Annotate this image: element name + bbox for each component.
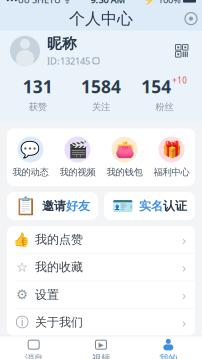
staticText: 认证 bbox=[163, 199, 187, 213]
staticText: 📋 bbox=[15, 196, 37, 216]
button[interactable]: 👛 bbox=[101, 136, 148, 178]
staticText: ⚡ 100% bbox=[144, 0, 181, 6]
staticText: 🎁 bbox=[161, 140, 181, 159]
button[interactable]: ☆ bbox=[7, 254, 195, 281]
staticText: 关于我们 bbox=[35, 315, 83, 330]
staticText: 1584 bbox=[81, 75, 121, 98]
button[interactable]: 🎬 bbox=[54, 136, 101, 178]
staticText: ▶ bbox=[98, 341, 103, 348]
staticText: 💬 bbox=[20, 140, 40, 159]
staticText: 154 bbox=[141, 75, 171, 98]
staticText: 昵称 bbox=[47, 35, 77, 53]
staticText: 我的点赞 bbox=[35, 232, 83, 247]
staticText: 设置 bbox=[35, 287, 59, 302]
staticText: 9:30 AM bbox=[90, 0, 125, 6]
staticText: 🎬 bbox=[67, 140, 87, 159]
staticText: 我的收藏 bbox=[35, 260, 83, 274]
staticText: 视频 bbox=[92, 353, 110, 359]
staticText: 粉丝 bbox=[155, 101, 173, 112]
staticText: 131 bbox=[23, 75, 53, 98]
button[interactable]: ▶ bbox=[67, 339, 135, 359]
button[interactable]: QR code bbox=[171, 41, 192, 61]
staticText: 我的钱包 bbox=[106, 166, 142, 178]
button[interactable]: 1584 bbox=[69, 75, 133, 112]
button[interactable]: Settings bbox=[180, 8, 202, 30]
button[interactable]: ⚙ bbox=[7, 281, 195, 309]
staticText: 邀请 bbox=[42, 199, 66, 213]
staticText: ⓘ bbox=[15, 314, 28, 330]
staticText: 我的视频 bbox=[59, 166, 95, 178]
button[interactable]: 🪪 bbox=[104, 192, 195, 220]
button[interactable]: ⓘ bbox=[7, 309, 195, 336]
staticText: 我的动态 bbox=[12, 166, 48, 178]
staticText: +10 bbox=[172, 75, 187, 86]
staticText: 👍 bbox=[13, 232, 30, 247]
staticText: › bbox=[182, 258, 186, 276]
button[interactable]: 我的 bbox=[135, 339, 202, 359]
staticText: 🪪 bbox=[112, 196, 134, 216]
staticText: 关注 bbox=[92, 101, 110, 112]
staticText: 👛 bbox=[114, 140, 134, 159]
staticText: 实名 bbox=[139, 199, 163, 213]
staticText: 福利中心 bbox=[153, 166, 189, 178]
staticText: 个人中心 bbox=[69, 9, 133, 28]
staticText: •••oo SHETU ᯤ bbox=[6, 0, 72, 6]
button[interactable]: 消息 bbox=[0, 339, 67, 359]
staticText: 好友 bbox=[66, 199, 90, 213]
staticText: 获赞 bbox=[29, 101, 47, 112]
staticText: ☆ bbox=[16, 259, 28, 275]
staticText: 消息 bbox=[25, 353, 43, 359]
staticText: 我的 bbox=[159, 353, 177, 359]
staticText: › bbox=[182, 313, 186, 331]
button[interactable]: 154 bbox=[133, 75, 196, 112]
staticText: › bbox=[182, 231, 186, 248]
button[interactable]: 131 bbox=[6, 75, 69, 112]
button[interactable]: 📋 bbox=[7, 192, 98, 220]
staticText: › bbox=[182, 286, 186, 303]
staticText: ID:132145 bbox=[47, 55, 90, 67]
button[interactable]: 🎁 bbox=[148, 136, 195, 178]
staticText: ⚙ bbox=[16, 287, 28, 302]
button[interactable]: 👍 bbox=[7, 226, 195, 254]
button[interactable]: 💬 bbox=[7, 136, 54, 178]
